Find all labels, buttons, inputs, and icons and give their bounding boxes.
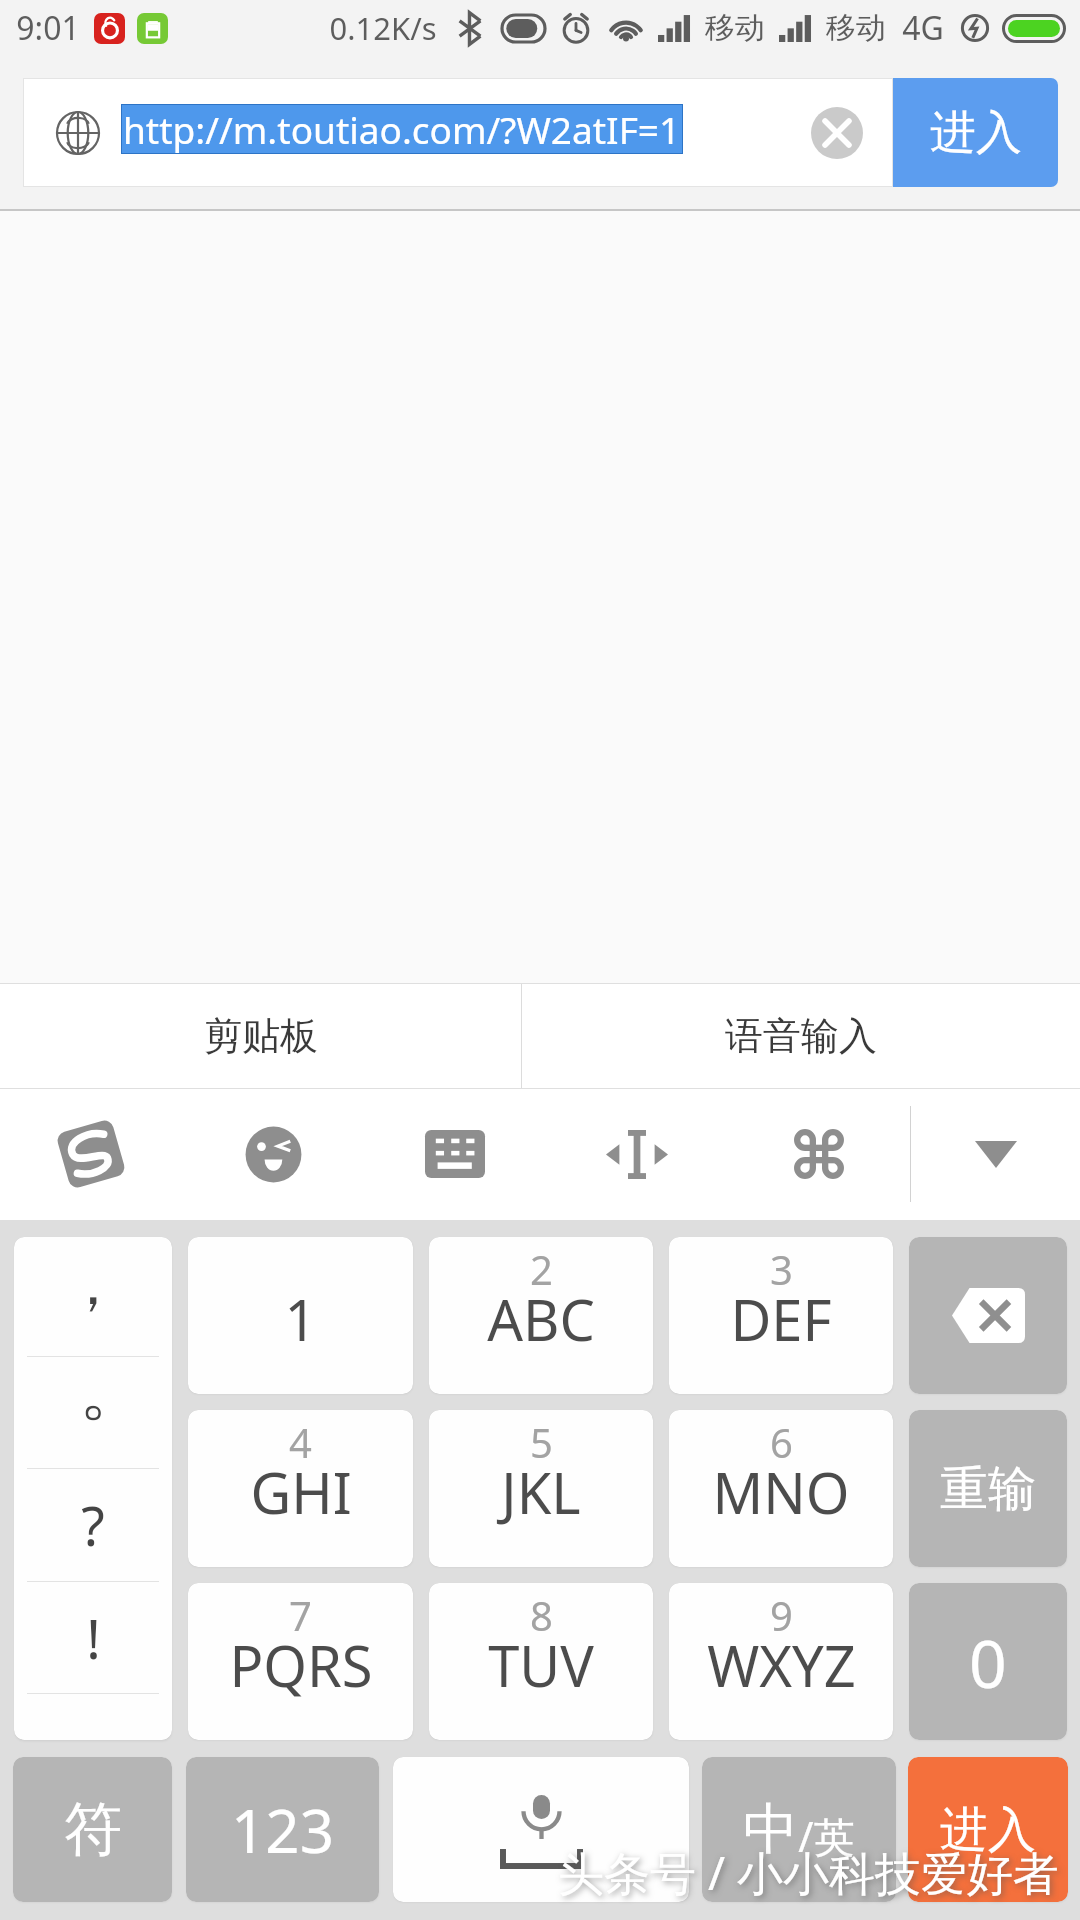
- staticText: 中: [743, 1795, 798, 1864]
- button[interactable]: Hide keyboard: [911, 1088, 1080, 1220]
- staticText: http://m.toutiao.com/?W2atIF=1: [123, 104, 681, 154]
- button[interactable]: 2: [429, 1237, 653, 1394]
- staticText: ，: [64, 1248, 122, 1321]
- button[interactable]: 6: [669, 1410, 893, 1567]
- staticText: 剪贴板: [204, 1012, 318, 1060]
- button[interactable]: http://m.toutiao.com/?W2atIF=1: [23, 78, 893, 187]
- staticText: 8: [530, 1588, 553, 1642]
- staticText: DEF: [730, 1281, 832, 1357]
- staticText: 3: [770, 1242, 793, 1296]
- button[interactable]: !: [14, 1582, 172, 1693]
- staticText: 进入: [930, 104, 1022, 162]
- button[interactable]: Move cursor: [546, 1088, 728, 1220]
- button[interactable]: 语音输入: [522, 984, 1080, 1088]
- button[interactable]: ，: [14, 1237, 172, 1356]
- staticText: 移动: [705, 9, 765, 47]
- staticText: /英: [798, 1808, 855, 1864]
- button[interactable]: 3: [669, 1237, 893, 1394]
- button[interactable]: Emoji: [182, 1088, 364, 1220]
- staticText: MNO: [712, 1454, 850, 1530]
- staticText: 0: [969, 1617, 1007, 1707]
- staticText: 9:01: [16, 6, 80, 50]
- staticText: 重输: [940, 1459, 1036, 1519]
- button[interactable]: Space and voice input: [393, 1757, 689, 1902]
- staticText: 头条号 / 小小科技爱好者: [558, 1841, 1060, 1904]
- button[interactable]: Backspace: [909, 1237, 1067, 1394]
- button[interactable]: Clear text: [794, 90, 880, 176]
- staticText: 符: [64, 1793, 122, 1866]
- button[interactable]: 进入: [893, 78, 1058, 187]
- staticText: 4: [289, 1415, 312, 1469]
- staticText: TUV: [488, 1627, 594, 1703]
- staticText: JKL: [501, 1454, 581, 1530]
- staticText: 7: [289, 1588, 312, 1642]
- button[interactable]: More functions: [728, 1088, 910, 1220]
- staticText: 语音输入: [725, 1012, 877, 1060]
- staticText: 移动: [826, 9, 886, 47]
- staticText: PQRS: [229, 1627, 373, 1703]
- staticText: 4G: [902, 6, 944, 50]
- button[interactable]: Sogou input settings: [0, 1088, 182, 1220]
- staticText: 0.12K/s: [329, 7, 437, 49]
- button[interactable]: 。: [14, 1357, 172, 1468]
- button[interactable]: 7: [188, 1583, 413, 1740]
- button[interactable]: 0: [909, 1583, 1067, 1740]
- staticText: WXYZ: [707, 1627, 856, 1703]
- button[interactable]: 8: [429, 1583, 653, 1740]
- button[interactable]: 中: [702, 1757, 896, 1902]
- button[interactable]: 剪贴板: [0, 984, 521, 1088]
- button[interactable]: 9: [669, 1583, 893, 1740]
- button[interactable]: 5: [429, 1410, 653, 1567]
- staticText: 123: [231, 1789, 334, 1871]
- staticText: 9: [770, 1588, 793, 1642]
- button[interactable]: 符: [13, 1757, 172, 1902]
- staticText: 1: [284, 1281, 317, 1357]
- staticText: ?: [81, 1488, 105, 1562]
- staticText: !: [86, 1601, 101, 1675]
- staticText: 2: [530, 1242, 553, 1296]
- button[interactable]: 4: [188, 1410, 413, 1567]
- staticText: 6: [770, 1415, 793, 1469]
- button[interactable]: 重输: [909, 1410, 1067, 1567]
- button[interactable]: 进入: [908, 1757, 1068, 1902]
- button[interactable]: 123: [186, 1757, 379, 1902]
- staticText: 。: [79, 1348, 147, 1434]
- staticText: ABC: [487, 1281, 595, 1357]
- staticText: 进入: [940, 1800, 1036, 1860]
- button[interactable]: ?: [14, 1469, 172, 1581]
- staticText: GHI: [250, 1454, 352, 1530]
- button[interactable]: 1: [188, 1237, 413, 1394]
- button[interactable]: Switch keyboard: [364, 1088, 546, 1220]
- staticText: 5: [530, 1415, 553, 1469]
